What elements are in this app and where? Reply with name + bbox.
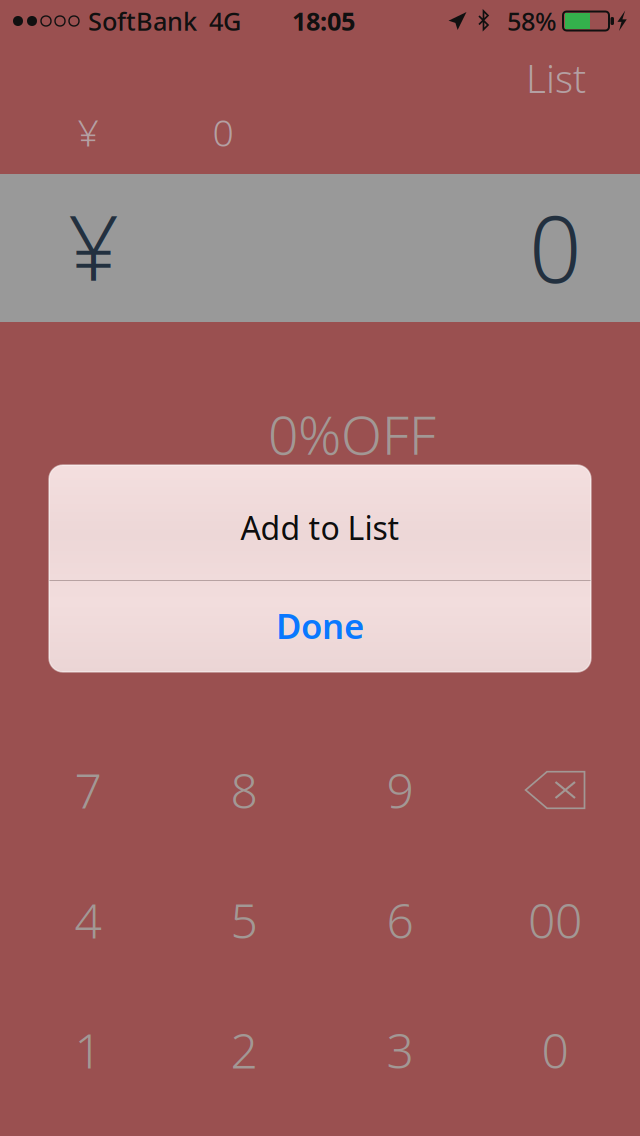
button[interactable]: Add to List xyxy=(49,465,591,580)
staticText: 5 xyxy=(230,888,257,952)
staticText: ¥ xyxy=(77,107,98,157)
staticText: 4G xyxy=(209,4,241,38)
button[interactable]: 0 xyxy=(480,985,630,1115)
staticText: ¥ xyxy=(68,187,119,305)
button[interactable]: 5 xyxy=(169,855,319,985)
staticText: Done xyxy=(276,602,364,648)
staticText: 00 xyxy=(528,888,582,952)
staticText: 1 xyxy=(74,1018,101,1082)
button[interactable]: 8 xyxy=(169,725,319,855)
button[interactable]: 2 xyxy=(169,985,319,1115)
staticText: 4 xyxy=(74,888,101,952)
button[interactable] xyxy=(480,725,630,855)
button[interactable]: 1 xyxy=(13,985,163,1115)
button[interactable]: 7 xyxy=(13,725,163,855)
button[interactable]: 9 xyxy=(325,725,475,855)
staticText: 0 xyxy=(541,1018,568,1082)
staticText: 0%OFF xyxy=(268,399,436,469)
staticText: 8 xyxy=(230,758,257,822)
button[interactable]: Done xyxy=(49,581,591,672)
staticText: 9 xyxy=(386,758,413,822)
staticText: List xyxy=(526,52,586,104)
button[interactable]: 6 xyxy=(325,855,475,985)
staticText: 58% xyxy=(507,4,557,38)
button[interactable]: 4 xyxy=(13,855,163,985)
button[interactable]: 3 xyxy=(325,985,475,1115)
button[interactable]: List xyxy=(501,50,611,106)
staticText: 2 xyxy=(230,1018,257,1082)
staticText: 18:05 xyxy=(292,4,355,38)
staticText: 7 xyxy=(74,758,101,822)
staticText: 6 xyxy=(386,888,413,952)
staticText: 0 xyxy=(529,186,582,308)
staticText: 3 xyxy=(386,1018,413,1082)
staticText: SoftBank xyxy=(88,4,197,38)
staticText: 0 xyxy=(212,107,233,157)
button[interactable]: 00 xyxy=(480,855,630,985)
staticText: Add to List xyxy=(240,506,399,549)
